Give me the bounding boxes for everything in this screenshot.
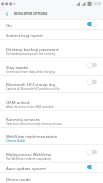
- button[interactable]: Switch off: [87, 62, 97, 68]
- staticText: Bluetooth HCI snoop log: [6, 81, 56, 87]
- button[interactable]: Multiprocess WebView: [0, 145, 103, 162]
- button[interactable]: Bluetooth HCI snoop log: [0, 75, 103, 92]
- staticText: Run WebView renderers separately: [6, 157, 84, 161]
- staticText: Full desktop backups are not currently: [6, 52, 84, 56]
- staticText: On: [6, 22, 12, 28]
- button[interactable]: Submit bug report: [0, 29, 103, 40]
- button[interactable]: Switch off: [87, 79, 97, 85]
- button[interactable]: Running services: [0, 110, 103, 127]
- staticText: Submit bug report: [6, 32, 43, 38]
- button[interactable]: Switch off: [87, 149, 97, 155]
- staticText: Chrome Stable: [6, 139, 84, 143]
- button[interactable]: Auto update system: [0, 162, 103, 173]
- staticText: Demo mode: [6, 176, 31, 182]
- staticText: Capture all Bluetooth HCI packets in a f…: [6, 87, 84, 91]
- staticText: Allow the device to be OEM unlocked: [6, 105, 84, 109]
- staticText: Auto update system: [6, 165, 46, 171]
- staticText: WebView implementation: [6, 133, 58, 139]
- staticText: Screen will never sleep while charging: [6, 70, 84, 74]
- staticText: View and control currently running servi…: [6, 122, 84, 126]
- button[interactable]: WebView implementation: [0, 127, 103, 144]
- staticText: 12:20: [93, 2, 101, 6]
- button[interactable]: Stay awake: [0, 58, 103, 75]
- staticText: Stay awake: [6, 64, 29, 70]
- button[interactable]: Demo mode: [0, 173, 103, 183]
- staticText: OEM unlock: [6, 99, 30, 105]
- button[interactable]: Switch on: [87, 21, 97, 27]
- button[interactable]: Back: [0, 8, 14, 19]
- button[interactable]: OEM unlock: [0, 93, 103, 110]
- staticText: Running services: [6, 116, 40, 122]
- button[interactable]: Switch on: [87, 164, 97, 170]
- staticText: Desktop backup password: [6, 46, 59, 52]
- staticText: DEVELOPER OPTIONS: [14, 12, 48, 16]
- button[interactable]: On: [0, 19, 103, 30]
- staticText: Multiprocess WebView: [6, 151, 51, 157]
- button[interactable]: Desktop backup password: [0, 40, 103, 57]
